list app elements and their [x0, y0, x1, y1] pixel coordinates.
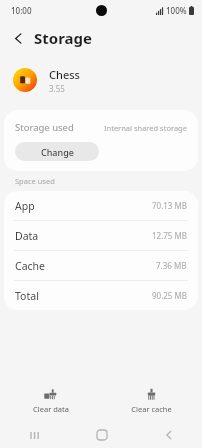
staticText: 10:00 [11, 5, 32, 16]
staticText: App [15, 199, 35, 213]
staticText: 12.75 MB [152, 230, 187, 241]
button[interactable]: Clear data [0, 385, 101, 417]
button[interactable]: Change [15, 142, 99, 161]
staticText: 7.36 MB [156, 260, 187, 271]
button[interactable]: Data [4, 221, 198, 250]
button[interactable]: Chess [0, 56, 202, 104]
staticText: Data [15, 229, 39, 243]
staticText: Cache [15, 259, 45, 273]
staticText: Clear data [33, 404, 69, 414]
staticText: Total [15, 289, 39, 303]
staticText: Chess [49, 67, 80, 82]
staticText: Storage used [15, 121, 74, 134]
staticText: Clear cache [131, 404, 172, 414]
button[interactable]: Back [135, 422, 202, 448]
button[interactable]: Total [4, 281, 198, 310]
staticText: Change [41, 146, 74, 158]
button[interactable]: Clear cache [101, 385, 202, 417]
button[interactable]: Recents [0, 422, 68, 448]
staticText: Space used [15, 176, 55, 186]
staticText: 90.25 MB [152, 290, 187, 301]
button[interactable]: Cache [4, 251, 198, 280]
staticText: 70.13 MB [152, 200, 187, 211]
staticText: Storage [34, 28, 92, 48]
staticText: Internal shared storage [104, 123, 187, 133]
staticText: 100% [166, 5, 187, 16]
staticText: 3.55 [49, 83, 65, 94]
button[interactable]: App [4, 191, 198, 220]
button[interactable]: Home [68, 422, 135, 448]
button[interactable]: Back [6, 26, 30, 50]
